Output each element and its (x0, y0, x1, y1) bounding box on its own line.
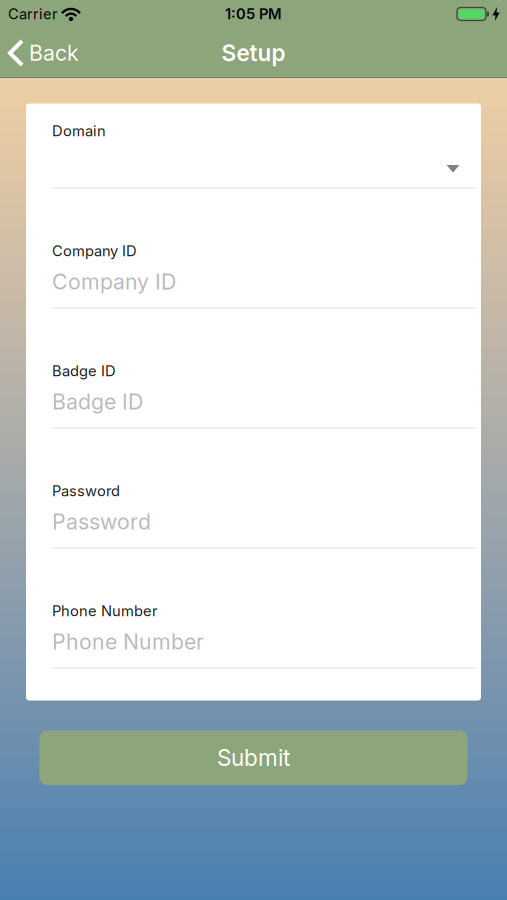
staticText: Phone Number (52, 602, 158, 620)
staticText: Domain (52, 122, 106, 140)
staticText: Badge ID (52, 389, 143, 414)
staticText: Back (29, 40, 79, 66)
staticText: Phone Number (52, 629, 204, 654)
button[interactable]: Submit (39, 730, 467, 785)
button[interactable]: Password (52, 504, 476, 549)
staticText: Carrier (8, 5, 58, 23)
staticText: Password (52, 509, 151, 534)
staticText: Company ID (52, 242, 137, 260)
button[interactable]: Back (0, 40, 79, 66)
button[interactable]: Company ID (52, 264, 476, 309)
button[interactable]: Phone Number (52, 624, 476, 669)
staticText: 1:05 PM (225, 5, 282, 23)
button[interactable]: Badge ID (52, 384, 476, 429)
staticText: Company ID (52, 269, 176, 294)
button[interactable]: Domain (52, 144, 476, 189)
staticText: Submit (217, 744, 290, 771)
staticText: Password (52, 482, 120, 500)
staticText: Badge ID (52, 362, 116, 380)
staticText: Setup (221, 40, 285, 66)
